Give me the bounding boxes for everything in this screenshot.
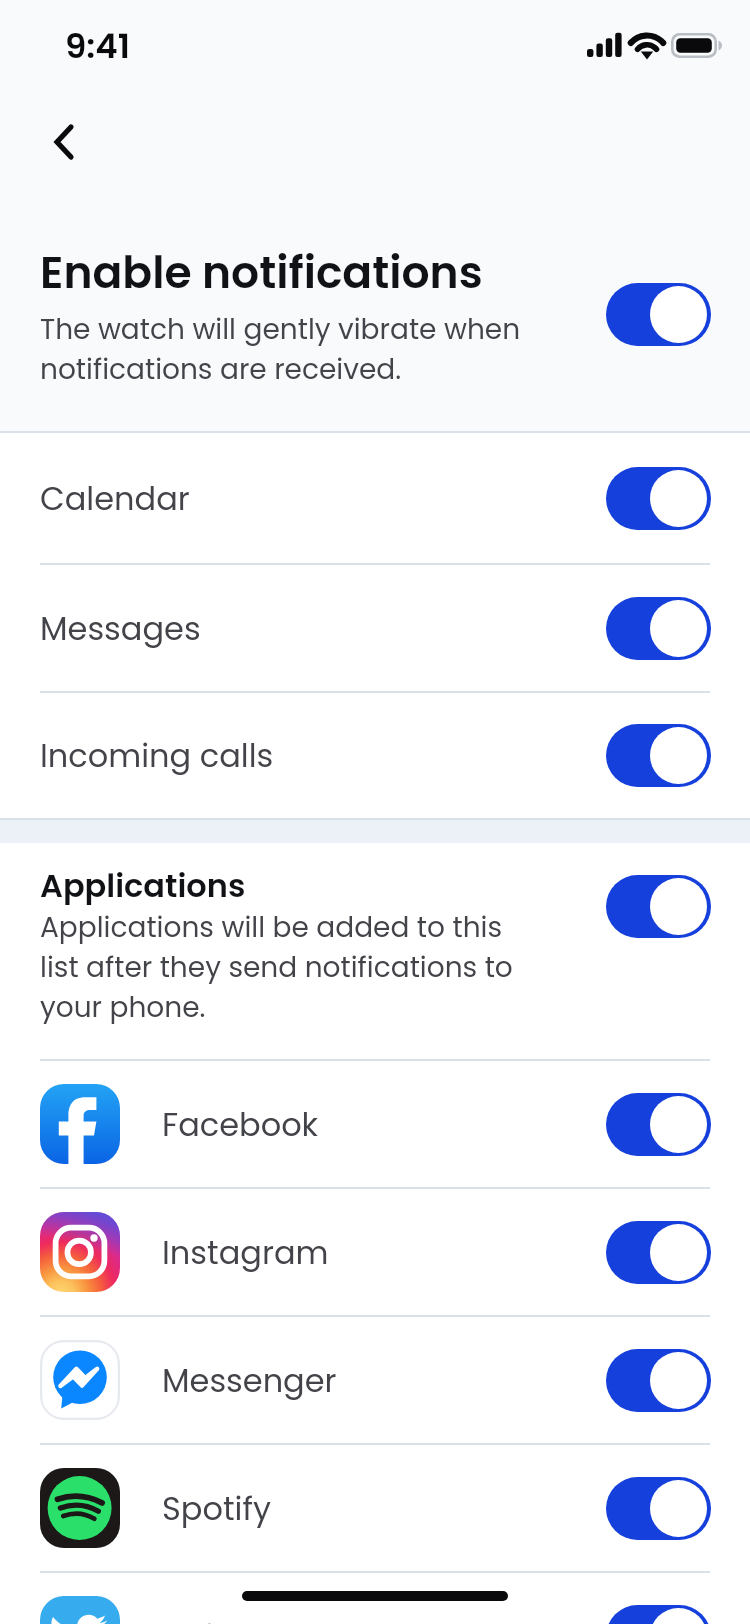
button[interactable]: Enable notifications <box>0 186 750 431</box>
button[interactable]: Toggle on <box>606 1477 711 1540</box>
staticText: Instagram <box>162 1230 329 1275</box>
button[interactable]: Toggle on <box>606 1349 711 1412</box>
staticText: The watch will gently vibrate when notif… <box>40 310 545 390</box>
staticText: Spotify <box>162 1486 271 1531</box>
staticText: Calendar <box>40 476 190 521</box>
staticText: Messages <box>40 606 201 651</box>
button[interactable]: Instagram <box>0 1189 750 1315</box>
button[interactable]: Toggle on <box>606 875 711 938</box>
staticText: 9:41 <box>65 22 131 70</box>
button[interactable]: Spotify <box>0 1445 750 1571</box>
button[interactable]: Toggle on <box>606 597 711 660</box>
staticText: Messenger <box>162 1358 337 1403</box>
staticText: Enable notifications <box>40 250 483 302</box>
button[interactable]: Toggle on <box>606 724 711 787</box>
button[interactable]: Toggle on <box>606 283 711 346</box>
staticText: Facebook <box>162 1102 319 1147</box>
button[interactable]: Messenger <box>0 1317 750 1443</box>
staticText: Applications <box>40 868 246 908</box>
button[interactable]: Toggle on <box>606 1605 711 1624</box>
button[interactable]: Toggle on <box>606 1093 711 1156</box>
staticText: Incoming calls <box>40 733 274 778</box>
button[interactable]: Back <box>20 98 108 186</box>
button[interactable]: Messages <box>0 565 750 691</box>
button[interactable]: Toggle on <box>606 1221 711 1284</box>
button[interactable]: Facebook <box>0 1061 750 1187</box>
button[interactable]: Calendar <box>0 433 750 563</box>
staticText: Applications will be added to this list … <box>40 908 545 1028</box>
button[interactable]: Twitter <box>0 1573 750 1624</box>
button[interactable]: Toggle on <box>606 467 711 530</box>
button[interactable]: Incoming calls <box>0 693 750 818</box>
button[interactable]: Applications <box>0 843 750 1059</box>
